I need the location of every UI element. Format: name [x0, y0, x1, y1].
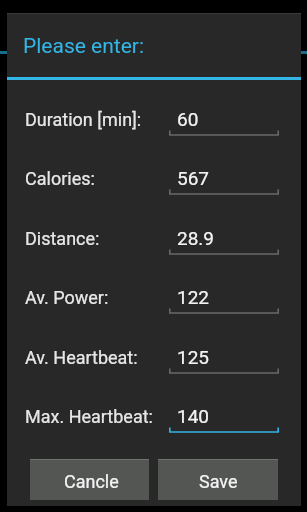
staticText: 60 — [177, 108, 199, 130]
button[interactable]: 125 — [169, 341, 279, 375]
staticText: 122 — [177, 286, 210, 308]
button[interactable]: 567 — [169, 162, 279, 196]
button[interactable]: Save — [158, 459, 278, 500]
button[interactable]: Please enter: — [7, 20, 301, 77]
staticText: Duration [min]: — [25, 109, 142, 130]
staticText: Calories: — [25, 168, 95, 189]
staticText: 140 — [177, 405, 210, 427]
staticText: 567 — [177, 167, 210, 189]
staticText: Max. Heartbeat: — [25, 406, 153, 427]
staticText: Save — [199, 471, 238, 492]
staticText: Cancle — [64, 471, 119, 492]
staticText: Please enter: — [23, 34, 145, 59]
button[interactable]: Cancle — [30, 459, 149, 500]
staticText: Av. Power: — [25, 287, 109, 308]
staticText: 28.9 — [177, 227, 215, 249]
button[interactable]: 60 — [169, 103, 279, 137]
button[interactable]: 28.9 — [169, 222, 279, 256]
staticText: 125 — [177, 346, 210, 368]
button[interactable]: 122 — [169, 281, 279, 315]
staticText: Distance: — [25, 228, 100, 249]
button[interactable]: 140 — [169, 400, 279, 434]
staticText: Av. Heartbeat: — [25, 347, 138, 368]
